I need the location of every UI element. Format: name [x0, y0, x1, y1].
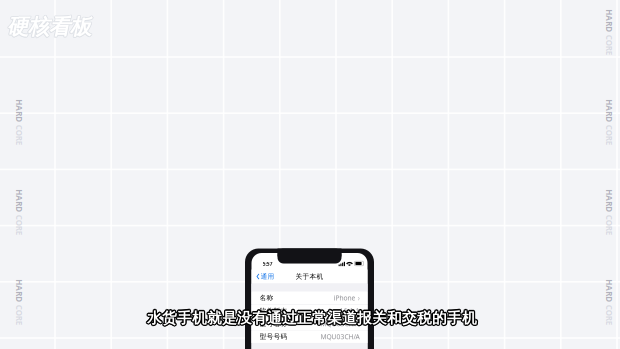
staticText: 关于本机 — [295, 272, 323, 281]
staticText: MQU03CH/A — [320, 319, 359, 328]
staticText: CORE — [612, 297, 620, 307]
staticText: 5:57 — [262, 260, 272, 267]
staticText: 水货手机就是没有通过正常渠道报关和交税的手机 — [148, 310, 478, 328]
button[interactable]: 型号名称 — [251, 317, 367, 330]
staticText: 水货手机就是没有通过正常渠道报关和交税的手机 — [146, 310, 476, 328]
staticText: › — [357, 292, 359, 303]
staticText: HARD — [586, 27, 609, 37]
staticText: iPhone — [333, 293, 355, 302]
staticText: 硬核看板 — [11, 15, 95, 41]
staticText: 水货手机就是没有通过正常渠道报关和交税的手机 — [146, 309, 476, 327]
button[interactable]: 软件版本 — [251, 304, 367, 317]
button[interactable]: 型号号码 — [251, 330, 367, 343]
button[interactable]: 名称 — [251, 291, 367, 304]
staticText: 水货手机就是没有通过正常渠道报关和交税的手机 — [147, 309, 477, 327]
staticText: HARD — [586, 297, 609, 307]
staticText: CORE — [612, 207, 620, 217]
staticText: 软件版本 — [259, 307, 287, 315]
staticText: 名称 — [259, 294, 273, 302]
staticText: 硬核看板 — [12, 14, 96, 41]
staticText: 水货手机就是没有通过正常渠道报关和交税的手机 — [147, 308, 477, 326]
staticText: 水货手机就是没有通过正常渠道报关和交税的手机 — [147, 310, 477, 328]
staticText: 型号号码 — [259, 333, 287, 341]
staticText: HARD — [0, 117, 19, 127]
staticText: 16.1.1 — [339, 306, 359, 315]
staticText: HARD — [0, 297, 19, 307]
staticText: HARD — [0, 207, 19, 217]
button[interactable]: 通用 — [251, 270, 275, 283]
staticText: HARD — [586, 207, 609, 217]
staticText: 硬核看板 — [12, 13, 96, 39]
staticText: 型号名称 — [259, 320, 287, 328]
staticText: MQU03CH/A — [320, 332, 359, 341]
staticText: 水货手机就是没有通过正常渠道报关和交税的手机 — [146, 308, 476, 326]
staticText: CORE — [612, 27, 620, 37]
staticText: 硬核看板 — [10, 13, 94, 39]
staticText: 硬核看板 — [11, 13, 95, 39]
staticText: CORE — [612, 117, 620, 127]
staticText: 硬核看板 — [11, 14, 95, 40]
staticText: 硬核看板 — [12, 14, 96, 40]
staticText: HARD — [586, 117, 609, 127]
staticText: 水货手机就是没有通过正常渠道报关和交税的手机 — [148, 309, 478, 327]
staticText: 水货手机就是没有通过正常渠道报关和交税的手机 — [148, 308, 478, 326]
staticText: 通用 — [261, 272, 275, 281]
staticText: 硬核看板 — [10, 14, 94, 40]
staticText: 硬核看板 — [10, 14, 94, 41]
